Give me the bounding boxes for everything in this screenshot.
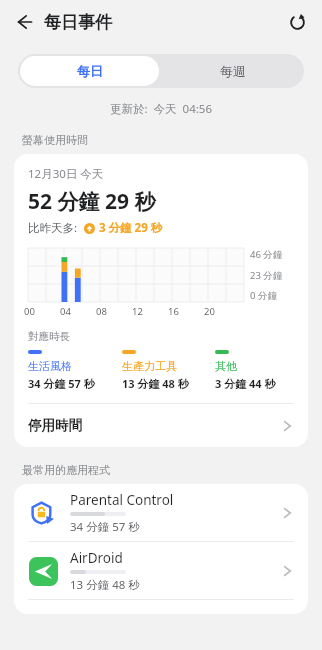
staticText: 螢幕使用時間 xyxy=(22,133,88,147)
staticText: 00 xyxy=(24,305,35,318)
button[interactable]: 每日 xyxy=(20,56,159,86)
staticText: 0 分鐘 xyxy=(250,289,277,302)
button[interactable]: Parental Control xyxy=(14,484,308,541)
staticText: 12 xyxy=(132,305,143,318)
staticText: 每週 xyxy=(220,63,246,79)
button[interactable]: 每週 xyxy=(161,54,304,88)
staticText: 每日事件 xyxy=(44,12,112,33)
staticText: 更新於: 今天 04:56 xyxy=(0,101,322,117)
staticText: AirDroid xyxy=(70,549,123,567)
staticText: 12月30日 今天 xyxy=(28,166,104,182)
staticText: 34 分鐘 57 秒 xyxy=(70,519,140,535)
staticText: 08 xyxy=(96,305,107,318)
staticText: 13 分鐘 48 秒 xyxy=(122,376,189,391)
staticText: 比昨天多: xyxy=(28,220,78,236)
staticText: 52 分鐘 29 秒 xyxy=(28,187,156,216)
staticText: 停用時間 xyxy=(28,417,283,434)
button[interactable]: Refresh xyxy=(280,5,314,39)
staticText: 34 分鐘 57 秒 xyxy=(28,376,95,391)
staticText: 16 xyxy=(168,305,179,318)
staticText: 20 xyxy=(204,305,215,318)
staticText: 46 分鐘 xyxy=(250,248,283,261)
staticText: Parental Control xyxy=(70,491,174,509)
staticText: 每日 xyxy=(77,63,103,79)
staticText: 生活風格 xyxy=(28,359,72,373)
staticText: 對應時長 xyxy=(28,330,70,343)
button[interactable]: Back xyxy=(8,6,40,38)
button[interactable]: 停用時間 xyxy=(14,404,308,447)
staticText: 3 分鐘 44 秒 xyxy=(215,376,276,391)
button[interactable]: AirDroid xyxy=(14,542,308,599)
staticText: 23 分鐘 xyxy=(250,269,283,282)
staticText: 其他 xyxy=(215,359,237,373)
staticText: 生產力工具 xyxy=(122,359,177,373)
staticText: 最常用的應用程式 xyxy=(22,463,110,477)
staticText: 3 分鐘 29 秒 xyxy=(99,220,163,236)
staticText: 13 分鐘 48 秒 xyxy=(70,577,140,593)
staticText: 04 xyxy=(60,305,71,318)
